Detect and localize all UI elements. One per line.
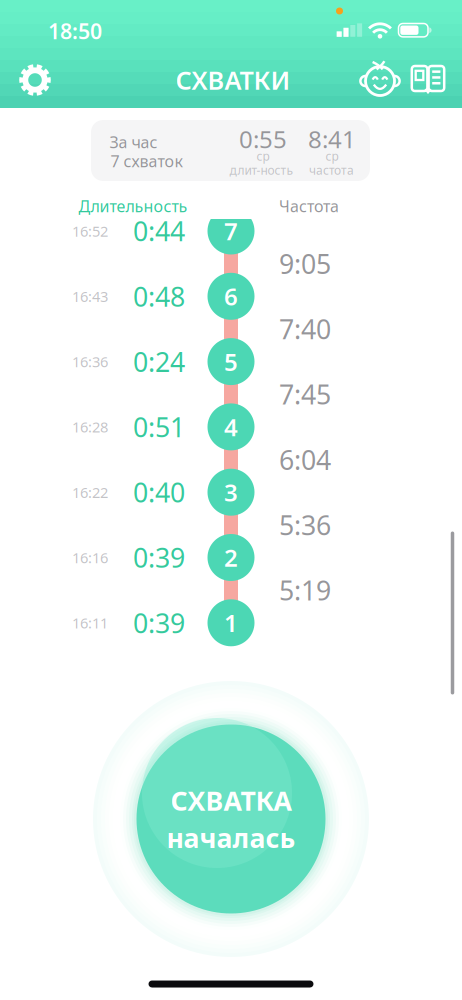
staticText: 0:39 [133, 540, 185, 575]
staticText: 16:43 [72, 287, 108, 306]
staticText: 3 [224, 476, 238, 508]
staticText: 6 [224, 280, 238, 312]
staticText: 0:48 [133, 279, 185, 314]
staticText: 16:36 [72, 352, 108, 371]
staticText: началась [166, 820, 295, 855]
button[interactable]: Settings [9, 54, 61, 106]
staticText: 9:05 [279, 246, 331, 281]
staticText: 16:16 [72, 548, 108, 567]
staticText: 0:39 [133, 605, 185, 640]
button[interactable]: 5 [207, 338, 254, 385]
staticText: длит-ность [229, 162, 293, 178]
staticText: СХВАТКА [170, 783, 291, 818]
staticText: 18:50 [48, 17, 102, 45]
staticText: частота [309, 162, 354, 178]
staticText: 0:40 [133, 474, 185, 510]
button[interactable]: 6 [207, 273, 254, 320]
staticText: 6:04 [279, 442, 331, 477]
staticText: 16:11 [72, 613, 108, 633]
staticText: 0:55 [239, 123, 287, 155]
staticText: 4 [224, 411, 238, 443]
staticText: 0:51 [133, 409, 185, 445]
button[interactable]: 3 [207, 469, 254, 516]
button[interactable]: Baby profile [356, 54, 404, 106]
staticText: 16:28 [72, 417, 108, 437]
staticText: 8:41 [308, 123, 356, 155]
staticText: 1 [224, 607, 238, 639]
staticText: 5:19 [279, 572, 331, 608]
staticText: Длительность [78, 195, 187, 217]
staticText: 0:44 [133, 213, 185, 249]
staticText: 16:22 [72, 482, 108, 502]
staticText: 7 схваток [110, 150, 182, 172]
staticText: 16:52 [72, 221, 108, 241]
staticText: 2 [224, 542, 238, 573]
staticText: 7 [224, 215, 238, 247]
button[interactable]: 4 [207, 403, 254, 450]
staticText: ср [256, 148, 269, 164]
button[interactable]: 2 [207, 534, 254, 581]
staticText: СХВАТКИ [175, 63, 290, 97]
staticText: За час [109, 131, 157, 153]
staticText: 5 [224, 346, 238, 378]
staticText: Частота [279, 195, 339, 217]
button[interactable]: 7 [207, 207, 254, 254]
staticText: ср [325, 148, 338, 164]
staticText: 7:40 [279, 311, 331, 347]
button[interactable]: СХВАТКА [93, 681, 369, 957]
staticText: 5:36 [279, 507, 331, 542]
staticText: 7:45 [279, 376, 331, 412]
staticText: 0:24 [133, 344, 185, 379]
button[interactable]: 1 [207, 599, 254, 646]
button[interactable]: Guide [406, 54, 450, 106]
